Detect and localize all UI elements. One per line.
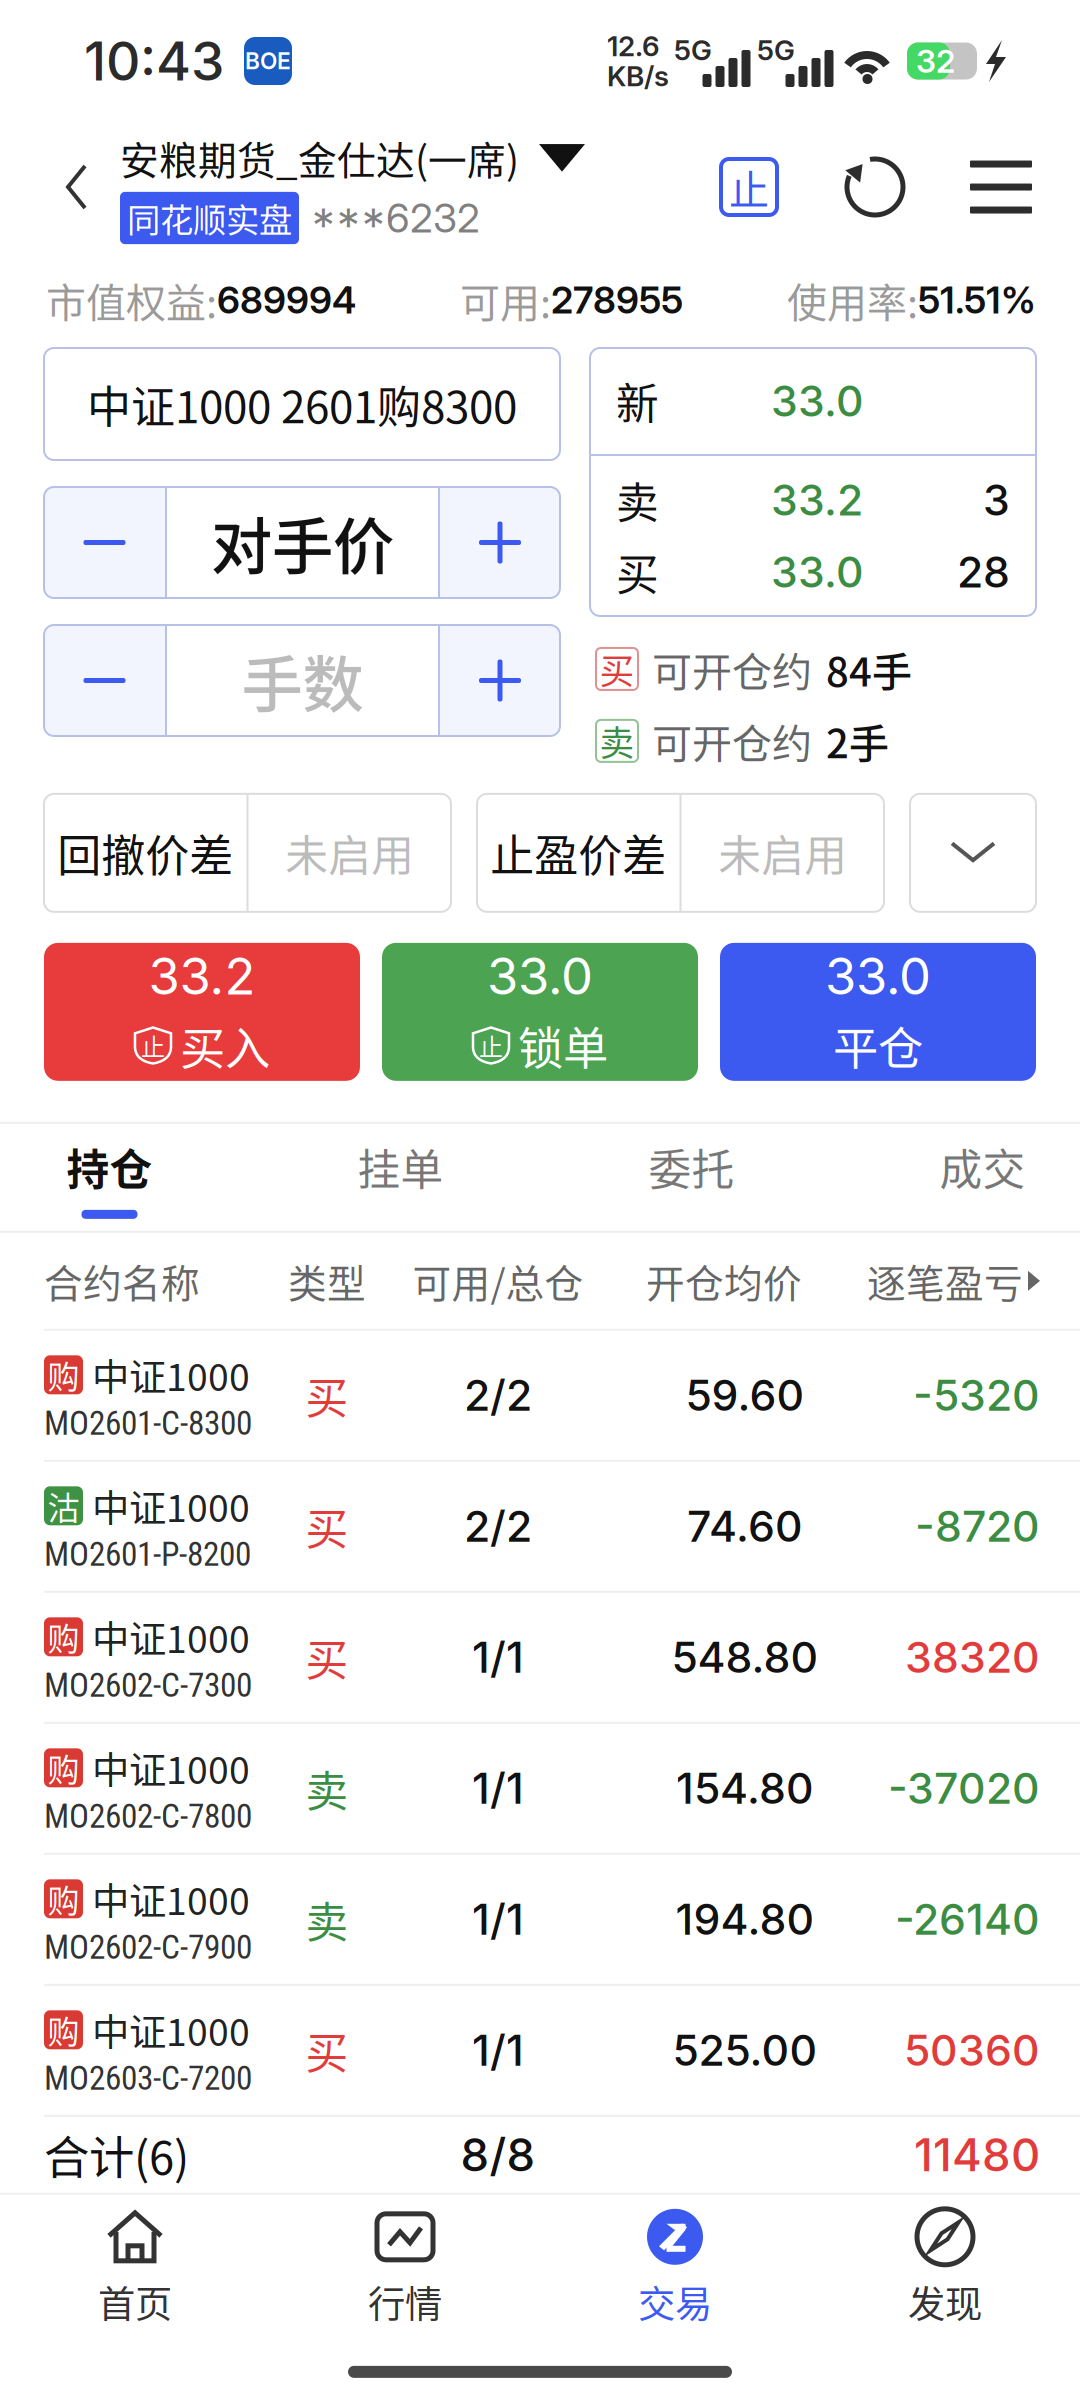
staticText: MO2602-C-7800	[44, 1797, 252, 1836]
staticText: 止盈价差	[490, 821, 666, 885]
staticText: 止	[729, 158, 769, 216]
button[interactable]: 购	[0, 1593, 1080, 1724]
staticText: 33.0	[771, 375, 864, 427]
staticText: 1/1	[472, 1893, 524, 1945]
button[interactable]: 首页	[0, 2195, 270, 2343]
staticText: 购	[47, 1876, 79, 1922]
button[interactable]: 交易	[540, 2195, 810, 2343]
button[interactable]: 回撤价差	[44, 794, 451, 912]
staticText: 548.80	[671, 1631, 818, 1683]
button[interactable]: 行情	[270, 2195, 540, 2343]
staticText: 33.0	[771, 546, 864, 598]
button[interactable]: 止盈价差	[477, 794, 884, 912]
staticText: 持仓	[66, 1136, 152, 1198]
staticText: 购	[47, 1352, 79, 1398]
button[interactable]: 安粮期货_金仕达(一席)	[120, 122, 585, 252]
staticText: 中证1000 2601购8300	[87, 372, 517, 436]
staticText: 买	[599, 644, 634, 694]
staticText: 未启用	[285, 822, 414, 884]
staticText: 止	[479, 1028, 503, 1063]
staticText: 33.2	[148, 945, 255, 1007]
button[interactable]: 33.0	[382, 943, 698, 1081]
staticText: 锁单	[518, 1013, 608, 1078]
staticText: 对手价	[211, 498, 394, 587]
button[interactable]: Refresh	[812, 122, 938, 252]
staticText: MO2601-P-8200	[44, 1535, 251, 1574]
staticText: 卖	[305, 1888, 348, 1950]
button[interactable]: 委托	[546, 1124, 837, 1231]
staticText: 交易	[638, 2275, 712, 2329]
button[interactable]: 购	[0, 1855, 1080, 1986]
staticText: 3	[983, 474, 1010, 526]
staticText: 沽	[47, 1483, 79, 1529]
staticText: 中证1000	[92, 1872, 250, 1926]
button[interactable]: Increase	[440, 487, 560, 598]
button[interactable]: 沽	[0, 1462, 1080, 1593]
staticText: 市值权益:	[46, 271, 217, 329]
button[interactable]: Menu	[938, 122, 1064, 252]
staticText: 可用:	[460, 271, 551, 329]
button[interactable]: 成交	[837, 1124, 1080, 1231]
staticText: 买	[305, 1495, 348, 1557]
staticText: 8/8	[460, 2127, 535, 2182]
staticText: 33.2	[771, 474, 863, 526]
staticText: 11480	[914, 2127, 1040, 2182]
staticText: 525.00	[672, 2024, 817, 2076]
staticText: 194.80	[675, 1893, 814, 1945]
staticText: 委托	[648, 1136, 734, 1198]
staticText: MO2602-C-7900	[44, 1928, 252, 1967]
staticText: 2/2	[464, 1369, 532, 1421]
staticText: 5G	[757, 33, 795, 67]
staticText: 买	[616, 541, 659, 603]
button[interactable]: More options	[910, 794, 1036, 912]
button[interactable]: 发现	[810, 2195, 1080, 2343]
staticText: KB/s	[607, 59, 669, 93]
button[interactable]: Increase	[440, 625, 560, 736]
staticText: 买	[305, 1364, 348, 1426]
staticText: 购	[47, 2007, 79, 2053]
staticText: -5320	[913, 1369, 1040, 1421]
staticText: 689994	[217, 277, 356, 323]
button[interactable]: 购	[0, 1331, 1080, 1462]
staticText: MO2601-C-8300	[44, 1404, 252, 1443]
button[interactable]: Stop	[686, 122, 812, 252]
staticText: 合计(6)	[44, 2122, 189, 2188]
staticText: 10:43	[84, 29, 224, 93]
staticText: 中证1000	[92, 2003, 250, 2057]
button[interactable]: 33.2	[44, 943, 360, 1081]
button[interactable]: 持仓	[0, 1124, 255, 1231]
staticText: 中证1000	[92, 1479, 250, 1533]
button[interactable]: Back	[34, 122, 120, 252]
staticText: 新	[616, 370, 659, 432]
button[interactable]: 购	[0, 1986, 1080, 2117]
button[interactable]: Decrease	[44, 625, 165, 736]
staticText: 可开仓约	[652, 640, 812, 698]
staticText: 手数	[241, 636, 363, 725]
staticText: 1/1	[472, 2024, 524, 2076]
staticText: 59.60	[685, 1369, 804, 1421]
staticText: BOE	[245, 47, 291, 75]
staticText: 卖	[616, 469, 659, 531]
staticText: 中证1000	[92, 1610, 250, 1664]
staticText: 逐笔盈亏	[867, 1253, 1023, 1309]
staticText: 挂单	[357, 1136, 443, 1198]
staticText: 74.60	[687, 1500, 803, 1552]
staticText: 12.6	[607, 29, 660, 63]
staticText: ***6232	[311, 194, 480, 242]
staticText: 154.80	[676, 1762, 814, 1814]
staticText: 未启用	[718, 822, 847, 884]
staticText: 平仓	[833, 1013, 923, 1078]
staticText: 1/1	[472, 1631, 524, 1683]
staticText: 84手	[826, 640, 912, 698]
staticText: 38320	[905, 1631, 1040, 1683]
button[interactable]: 33.0	[720, 943, 1036, 1081]
button[interactable]: 中证1000 2601购8300	[44, 348, 560, 460]
staticText: 买	[305, 1626, 348, 1688]
button[interactable]: 挂单	[255, 1124, 546, 1231]
staticText: 33.0	[487, 945, 593, 1007]
staticText: 中证1000	[92, 1348, 250, 1402]
button[interactable]: Decrease	[44, 487, 165, 598]
staticText: 卖	[599, 716, 634, 766]
button[interactable]: 购	[0, 1724, 1080, 1855]
staticText: 购	[47, 1745, 79, 1791]
